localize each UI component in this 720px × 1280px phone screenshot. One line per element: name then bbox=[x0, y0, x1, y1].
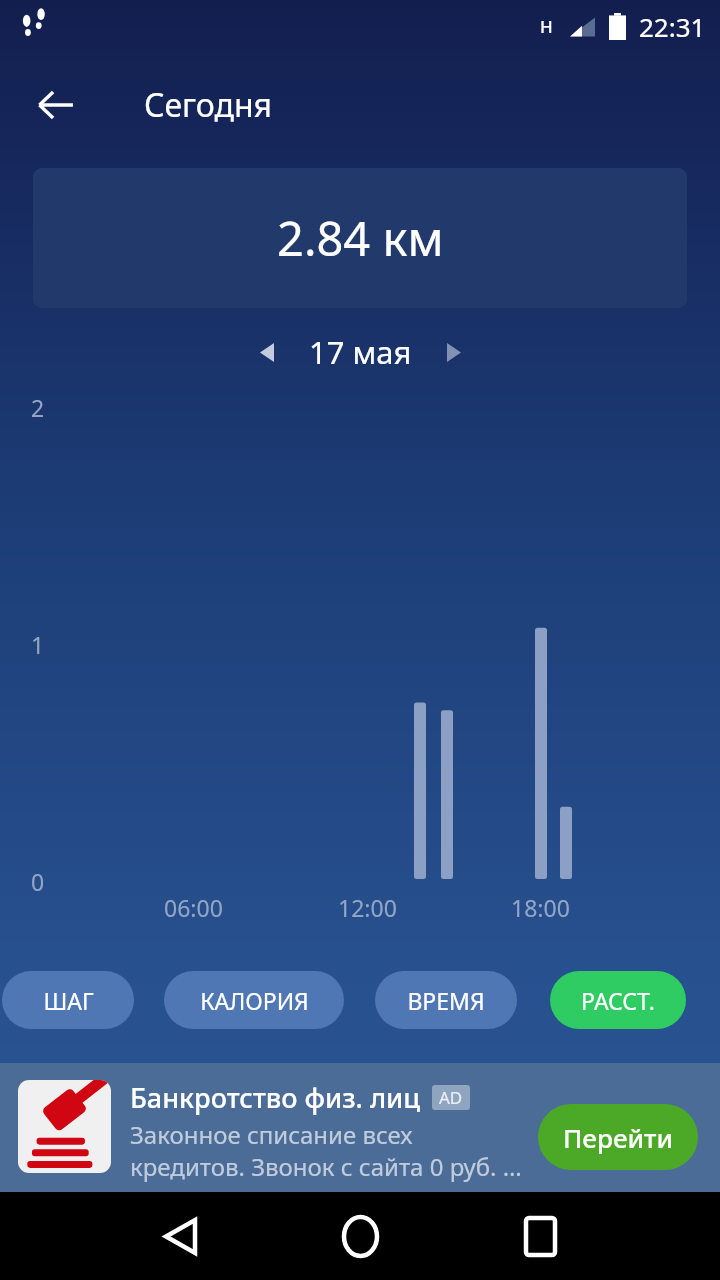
staticText: 18:00 bbox=[511, 892, 570, 923]
staticText: Законное списание всех кредитов. Звонок … bbox=[130, 1118, 530, 1183]
staticText: H bbox=[540, 15, 553, 38]
staticText: Сегодня bbox=[144, 83, 273, 127]
staticText: AD bbox=[439, 1086, 463, 1109]
staticText: 1 bbox=[31, 629, 45, 660]
button[interactable]: Банкротство физ. лиц bbox=[0, 1063, 720, 1192]
staticText: ВРЕМЯ bbox=[407, 985, 485, 1016]
staticText: ШАГ bbox=[43, 985, 94, 1016]
staticText: Банкротство физ. лиц bbox=[130, 1079, 421, 1116]
button[interactable]: 2.84 км bbox=[33, 168, 687, 308]
button[interactable]: РАССТ. bbox=[550, 971, 686, 1029]
button[interactable]: Обзор bbox=[480, 1192, 600, 1280]
staticText: 0 bbox=[31, 866, 45, 897]
button[interactable]: Домой bbox=[300, 1192, 420, 1280]
staticText: РАССТ. bbox=[581, 985, 655, 1016]
button[interactable]: Назад bbox=[23, 72, 89, 138]
button[interactable]: ШАГ bbox=[2, 971, 134, 1029]
button[interactable]: Следующий день bbox=[430, 328, 478, 376]
button[interactable]: Предыдущий день bbox=[243, 328, 291, 376]
button[interactable]: Перейти bbox=[538, 1104, 698, 1170]
button[interactable]: Назад bbox=[120, 1192, 240, 1280]
staticText: КАЛОРИЯ bbox=[200, 985, 309, 1016]
staticText: 2.84 км bbox=[277, 206, 444, 270]
staticText: Перейти bbox=[563, 1120, 674, 1155]
staticText: 2 bbox=[31, 392, 45, 423]
staticText: 17 мая bbox=[309, 331, 412, 373]
staticText: 12:00 bbox=[338, 892, 397, 923]
button[interactable]: ВРЕМЯ bbox=[375, 971, 517, 1029]
staticText: 06:00 bbox=[164, 892, 223, 923]
button[interactable]: КАЛОРИЯ bbox=[164, 971, 344, 1029]
staticText: 22:31 bbox=[639, 9, 706, 44]
